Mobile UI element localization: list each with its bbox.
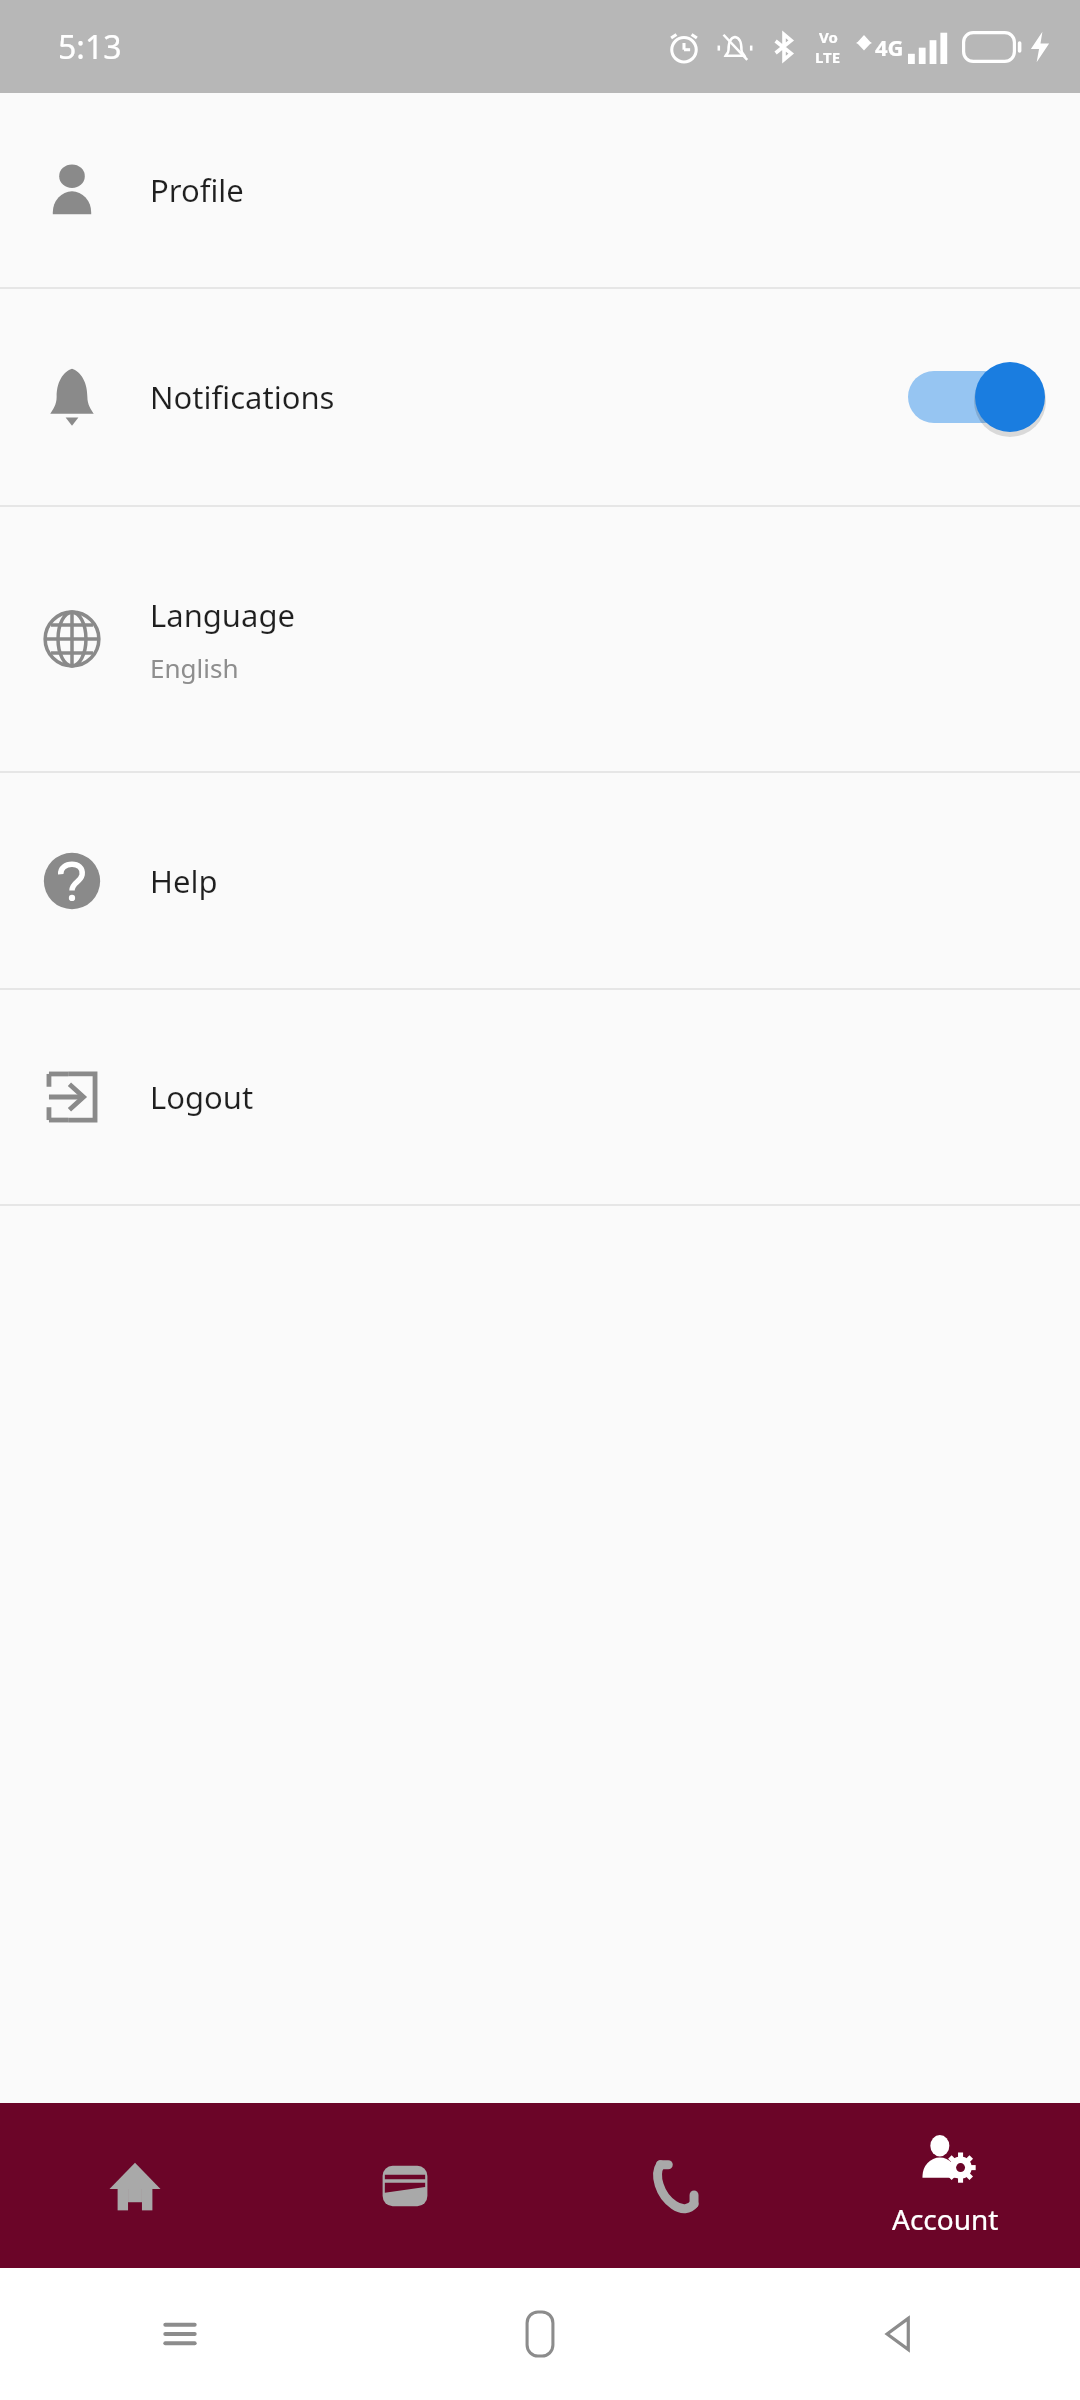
button[interactable]: Cards (270, 2103, 540, 2268)
button[interactable]: Toggle notifications (890, 352, 1040, 442)
staticText: English (150, 650, 239, 685)
button[interactable]: Home (360, 2268, 720, 2400)
staticText: Profile (150, 169, 244, 211)
button[interactable]: Recents (0, 2268, 360, 2400)
staticText: Language (150, 594, 295, 636)
staticText: LTE (815, 47, 841, 67)
button[interactable]: Notifications (0, 289, 1080, 505)
button[interactable]: Account (810, 2103, 1080, 2268)
button[interactable]: Language (0, 507, 1080, 771)
staticText: 5:13 (58, 25, 122, 69)
button[interactable]: Profile (0, 93, 1080, 287)
button[interactable]: Back (720, 2268, 1080, 2400)
staticText: Notifications (150, 376, 335, 418)
staticText: 4G (875, 32, 904, 62)
button[interactable]: Home (0, 2103, 270, 2268)
button[interactable]: Help (0, 773, 1080, 988)
staticText: Account (892, 2200, 999, 2238)
staticText: Vo (819, 27, 838, 47)
button[interactable]: Logout (0, 990, 1080, 1204)
staticText: Help (150, 860, 218, 902)
staticText: Logout (150, 1076, 254, 1118)
button[interactable]: Calls (540, 2103, 810, 2268)
